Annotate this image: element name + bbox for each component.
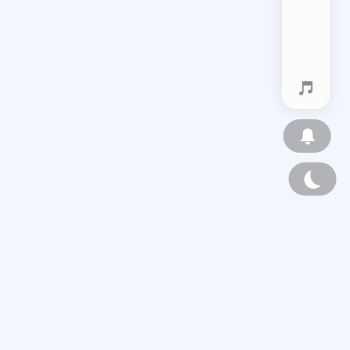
button[interactable]: Sleep Focus [289, 162, 336, 196]
button[interactable]: Silent Mode [283, 119, 331, 153]
button[interactable]: Now Playing [282, 0, 330, 109]
